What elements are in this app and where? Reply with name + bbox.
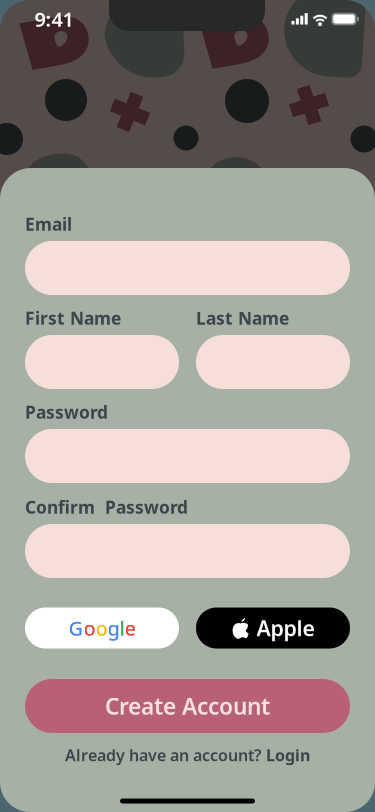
staticText: Last Name [196,306,289,329]
staticText: Email [25,212,72,235]
staticText: o [95,615,107,641]
staticText: e [124,615,135,641]
staticText: G [68,615,83,641]
staticText: Confirm Password [25,495,188,518]
staticText: l [119,615,124,641]
button[interactable]: Already have an account? [37,744,337,766]
staticText: 9:41 [34,6,73,32]
button[interactable] [25,241,350,295]
button[interactable]: G [25,607,179,648]
staticText: g [107,615,119,641]
staticText: Password [25,400,108,423]
staticText: Apple [256,614,314,642]
button[interactable]: Apple [196,607,350,648]
button[interactable] [25,524,350,578]
button[interactable] [25,335,179,389]
staticText: o [83,615,95,641]
button[interactable] [196,335,350,389]
button[interactable]: Create Account [25,679,350,733]
staticText: Already have an account? [65,744,261,766]
button[interactable] [25,429,350,483]
staticText: Create Account [105,691,270,721]
staticText: Login [266,744,310,766]
staticText: First Name [25,306,121,329]
